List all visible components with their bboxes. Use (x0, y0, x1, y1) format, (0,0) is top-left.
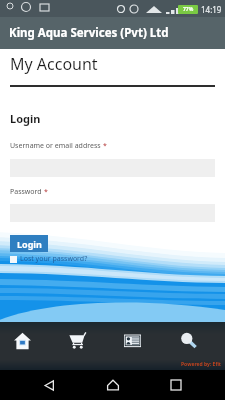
staticText: * (44, 187, 48, 197)
staticText: My Account (10, 53, 98, 75)
button[interactable]: Recents (161, 370, 191, 400)
button[interactable]: Shopping cart (50, 322, 104, 360)
button[interactable]: Contact us (105, 322, 159, 360)
staticText: Login (10, 111, 41, 126)
staticText: Lost your password? (20, 254, 88, 264)
staticText: King Aqua Services (Pvt) Ltd (9, 25, 169, 41)
button[interactable]: Search (161, 322, 215, 360)
staticText: 77% (183, 6, 194, 13)
staticText: Password (10, 187, 44, 197)
button[interactable]: Lost your password? (10, 254, 88, 264)
button[interactable]: Home (0, 322, 49, 360)
staticText: Powered by: Efit (181, 361, 221, 368)
button[interactable]: Home (98, 370, 128, 400)
staticText: 14:19 (201, 4, 222, 15)
button[interactable]: King Aqua Services (Pvt) Ltd (0, 17, 225, 49)
button[interactable]: Login (10, 235, 48, 252)
button[interactable]: Back (34, 370, 64, 400)
staticText: * (103, 141, 107, 151)
staticText: Username or email address (10, 141, 103, 151)
staticText: Login (17, 238, 42, 250)
